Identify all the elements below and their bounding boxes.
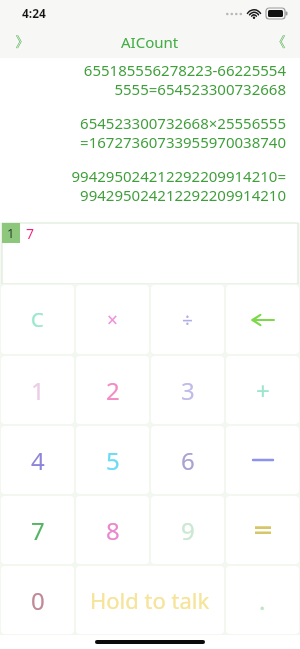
button[interactable]: × [76, 285, 149, 354]
button[interactable]: + [226, 356, 299, 424]
button[interactable]: C [1, 285, 74, 354]
staticText: ÷ [182, 307, 193, 333]
staticText: 3 [181, 374, 195, 407]
staticText: 1 [31, 374, 45, 407]
button[interactable]: 6 [151, 426, 224, 494]
staticText: 99429502421229220991421​0= 9942950242122… [14, 166, 286, 205]
staticText: 》 [15, 33, 30, 52]
button[interactable]: 7 [1, 496, 74, 564]
staticText: 4 [31, 444, 45, 477]
button[interactable]: Back [256, 26, 300, 58]
button[interactable]: Backspace [226, 285, 299, 354]
button[interactable]: 0 [1, 566, 74, 634]
staticText: 6 [181, 444, 195, 477]
button[interactable]: 2 [76, 356, 149, 424]
staticText: Hold to talk [90, 585, 210, 615]
button[interactable]: 9 [151, 496, 224, 564]
button[interactable]: Forward [0, 26, 44, 58]
staticText: 8 [106, 514, 120, 547]
button[interactable]: Equals [226, 496, 299, 564]
staticText: 6551855562782​23-66225554 5555=654523300… [14, 60, 286, 99]
staticText: . [259, 584, 266, 617]
staticText: AICount [121, 32, 179, 52]
staticText: + [256, 374, 270, 407]
staticText: 7 [31, 514, 45, 547]
button[interactable]: Minus [226, 426, 299, 494]
button[interactable]: 4 [1, 426, 74, 494]
staticText: 9 [181, 514, 195, 547]
staticText: C [31, 306, 44, 333]
staticText: 2 [106, 374, 120, 407]
staticText: 0 [31, 584, 45, 617]
staticText: 7 [26, 224, 35, 243]
button[interactable]: 3 [151, 356, 224, 424]
button[interactable]: ÷ [151, 285, 224, 354]
staticText: 《 [271, 33, 286, 52]
staticText: × [107, 307, 118, 333]
button[interactable]: Hold to talk [76, 566, 224, 634]
staticText: 4:24 [22, 5, 46, 21]
button[interactable]: 8 [76, 496, 149, 564]
button[interactable]: 1 [1, 356, 74, 424]
staticText: 5 [106, 444, 120, 477]
staticText: 1 [7, 224, 15, 242]
staticText: 654523300732668×25556555 =16727360733955… [14, 113, 286, 152]
button[interactable]: 5 [76, 426, 149, 494]
